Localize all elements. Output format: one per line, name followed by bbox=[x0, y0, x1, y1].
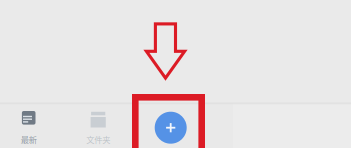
staticText: 文件夹 bbox=[86, 133, 110, 145]
button[interactable]: New note bbox=[153, 110, 189, 146]
button[interactable]: 文件夹 bbox=[70, 103, 126, 148]
button[interactable]: 最新 bbox=[1, 103, 57, 148]
staticText: 最新 bbox=[21, 133, 37, 145]
